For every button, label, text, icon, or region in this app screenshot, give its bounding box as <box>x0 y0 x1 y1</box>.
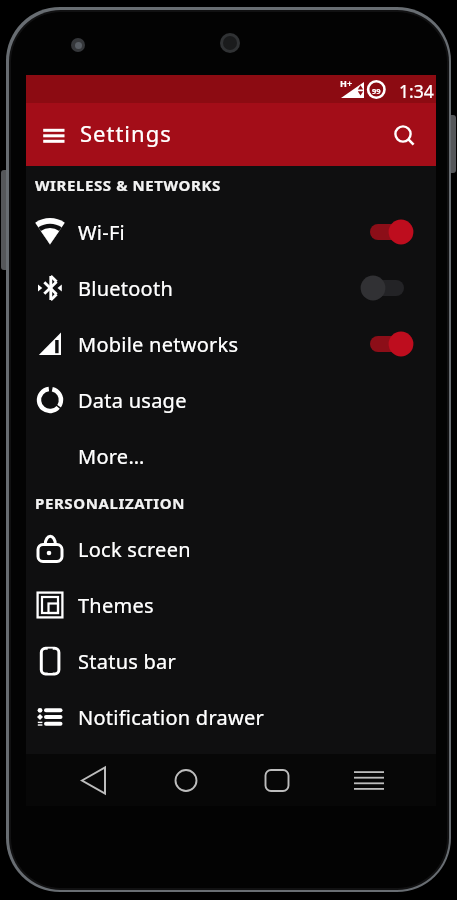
staticText: Notification drawer <box>78 704 264 731</box>
staticText: Themes <box>78 592 154 619</box>
staticText: 1:34 <box>399 79 434 103</box>
button[interactable]: Status bar <box>26 633 436 689</box>
button[interactable]: Lock screen <box>26 521 436 577</box>
button[interactable] <box>361 219 413 245</box>
button[interactable]: Notification drawer <box>26 689 436 745</box>
button[interactable]: Bluetooth <box>26 260 436 316</box>
staticText: H+ <box>340 77 353 89</box>
button[interactable] <box>163 757 209 803</box>
button[interactable] <box>254 757 300 803</box>
button[interactable] <box>34 124 76 164</box>
button[interactable] <box>361 275 413 301</box>
button[interactable] <box>346 757 392 803</box>
button[interactable]: Data usage <box>26 372 436 428</box>
button[interactable]: Mobile networks <box>26 316 436 372</box>
staticText: Data usage <box>78 387 187 414</box>
button[interactable] <box>383 114 425 156</box>
button[interactable]: More… <box>26 428 436 484</box>
staticText: Lock screen <box>78 536 191 563</box>
staticText: WIRELESS & NETWORKS <box>35 175 221 195</box>
button[interactable] <box>71 757 117 803</box>
staticText: Status bar <box>78 648 177 675</box>
staticText: Bluetooth <box>78 275 174 302</box>
staticText: 99 <box>372 86 381 96</box>
staticText: More… <box>78 443 145 470</box>
button[interactable]: Themes <box>26 577 436 633</box>
staticText: PERSONALIZATION <box>35 493 186 513</box>
staticText: Settings <box>80 118 172 148</box>
staticText: Mobile networks <box>78 331 239 358</box>
staticText: Wi-Fi <box>78 219 125 246</box>
button[interactable]: Wi-Fi <box>26 204 436 260</box>
button[interactable] <box>361 331 413 357</box>
